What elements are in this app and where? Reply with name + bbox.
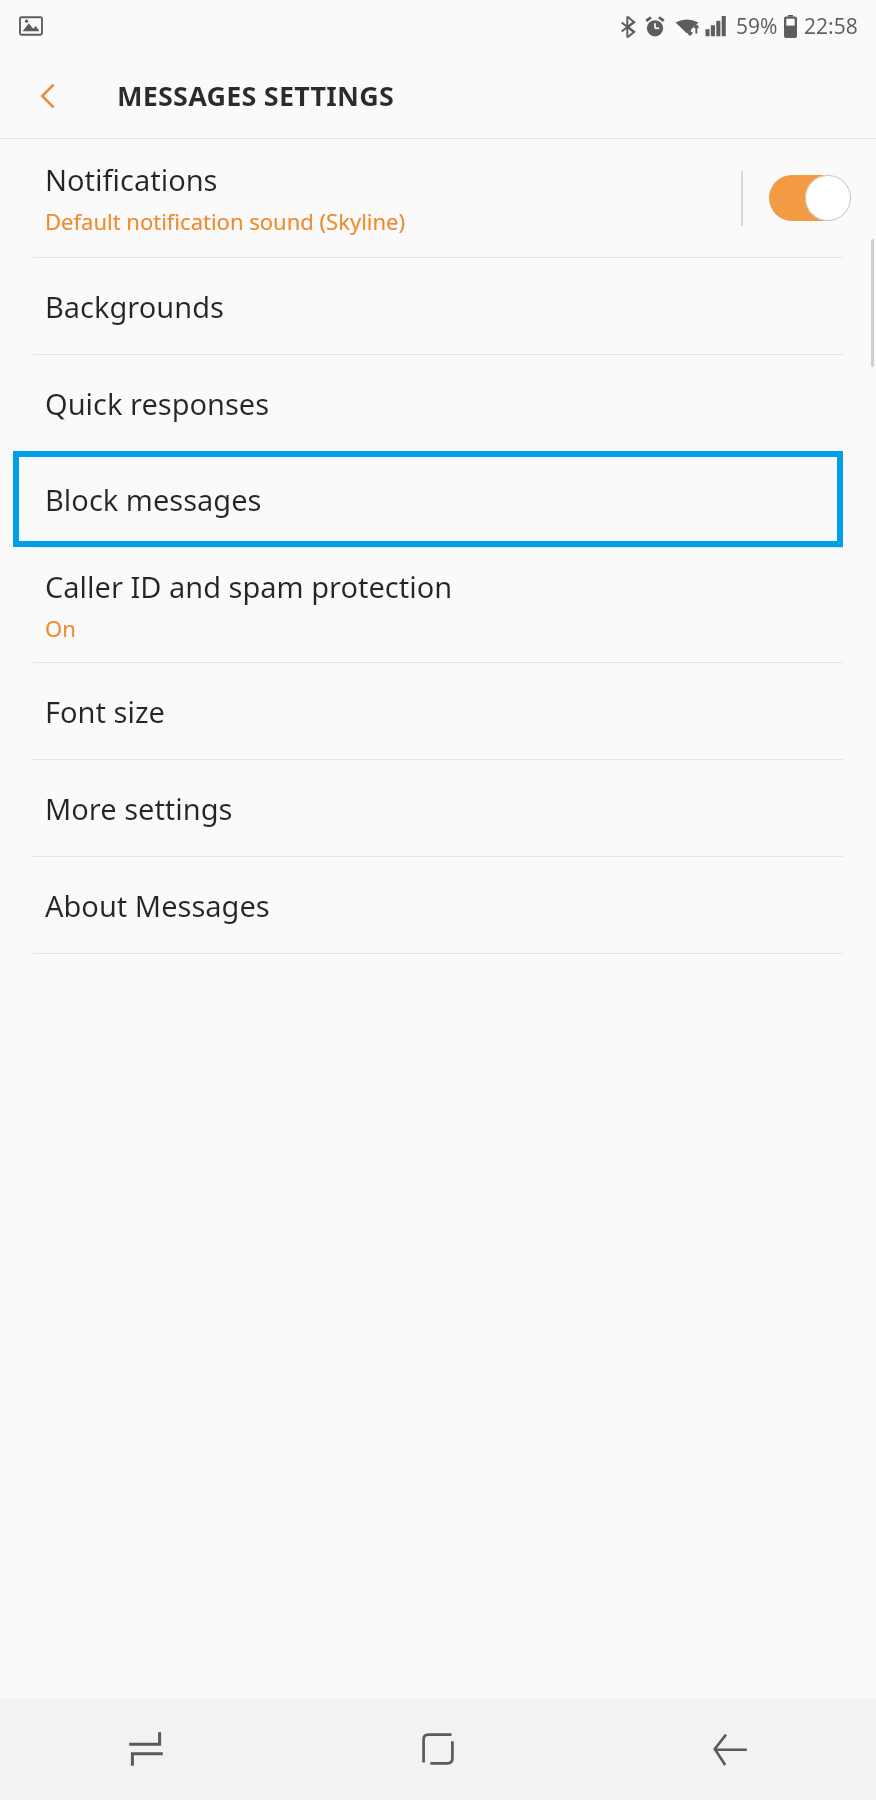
staticText: Default notification sound (Skyline) <box>45 206 406 236</box>
button[interactable]: About Messages <box>0 857 876 953</box>
button[interactable]: More settings <box>0 760 876 856</box>
staticText: MESSAGES SETTINGS <box>117 77 395 114</box>
button[interactable]: Font size <box>0 663 876 759</box>
button[interactable]: Back <box>22 69 76 123</box>
button[interactable]: Quick responses <box>0 355 876 451</box>
button[interactable]: Notifications <box>0 139 876 257</box>
button[interactable]: Back <box>584 1698 876 1800</box>
button[interactable]: Home <box>292 1698 584 1800</box>
staticText: Notifications <box>45 160 218 199</box>
staticText: On <box>45 613 76 643</box>
staticText: Quick responses <box>45 384 270 423</box>
staticText: 22:58 <box>804 12 858 41</box>
staticText: Backgrounds <box>45 287 224 326</box>
button[interactable]: Notifications toggle <box>743 139 876 257</box>
button[interactable]: Recents <box>0 1698 292 1800</box>
staticText: Font size <box>45 692 165 731</box>
staticText: More settings <box>45 789 233 828</box>
button[interactable]: Block messages <box>13 451 843 547</box>
button[interactable]: Caller ID and spam protection <box>0 548 876 662</box>
button[interactable]: Backgrounds <box>0 258 876 354</box>
staticText: Block messages <box>45 480 262 519</box>
staticText: 59% <box>736 12 778 41</box>
staticText: About Messages <box>45 886 270 925</box>
staticText: Caller ID and spam protection <box>45 567 453 606</box>
